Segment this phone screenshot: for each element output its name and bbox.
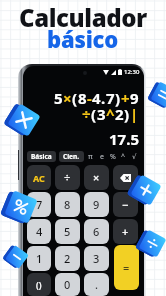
staticText: 9 <box>130 88 139 108</box>
button[interactable]: × <box>84 165 109 190</box>
button[interactable]: % <box>107 151 118 162</box>
staticText: 8 <box>64 197 71 212</box>
staticText: 5 <box>64 224 71 239</box>
staticText: Cien. <box>63 152 80 161</box>
staticText: 4 <box>92 88 101 108</box>
staticText: 2 <box>64 251 71 266</box>
staticText: 7 <box>106 88 115 108</box>
staticText: ( <box>72 88 78 108</box>
button[interactable]: ÷ <box>55 165 80 190</box>
staticText: π <box>88 152 93 162</box>
staticText: e <box>100 152 104 162</box>
staticText: 3 <box>97 104 106 124</box>
staticText: 4 <box>36 224 43 239</box>
button[interactable]: e <box>96 151 107 162</box>
staticText: ) <box>115 88 121 108</box>
button[interactable] <box>113 273 138 296</box>
button[interactable]: 0 <box>55 273 80 296</box>
button[interactable] <box>113 246 138 271</box>
staticText: 12:30 <box>124 68 140 76</box>
staticText: 1 <box>36 251 43 266</box>
button[interactable]: 5 <box>55 219 80 244</box>
staticText: √ <box>132 153 137 161</box>
staticText: AC <box>33 172 45 184</box>
button[interactable]: ^ <box>118 151 129 162</box>
staticText: Básica <box>31 152 52 161</box>
staticText: ) <box>124 104 130 124</box>
button[interactable]: 7 <box>27 192 51 217</box>
staticText: + <box>121 88 130 108</box>
staticText: 7 <box>36 197 43 212</box>
staticText: ^ <box>106 104 115 124</box>
staticText: 6 <box>93 224 100 239</box>
staticText: 2 <box>115 104 124 124</box>
staticText: 3 <box>93 251 100 266</box>
button[interactable]: Básica <box>27 151 56 162</box>
staticText: × <box>63 88 72 108</box>
staticText: % <box>110 152 116 162</box>
staticText: Calculador <box>19 1 147 34</box>
button[interactable]: 1 <box>27 246 51 271</box>
button[interactable]: + <box>113 219 138 244</box>
staticText: ÷ <box>82 104 91 124</box>
button[interactable]: 3 <box>84 246 109 271</box>
button[interactable]: 4 <box>27 219 51 244</box>
staticText: 5 <box>54 88 63 108</box>
staticText: . <box>101 88 106 108</box>
button[interactable]: √ <box>129 151 140 162</box>
button[interactable]: Backspace <box>113 165 138 190</box>
staticText: = <box>123 260 130 275</box>
staticText: ^ <box>121 152 126 162</box>
staticText: 0 <box>64 277 71 292</box>
button[interactable]: π <box>85 151 96 162</box>
button[interactable]: = <box>114 245 139 290</box>
button[interactable]: − <box>113 192 138 217</box>
staticText: ÷ <box>64 170 71 185</box>
staticText: () <box>36 279 42 291</box>
staticText: | <box>130 104 139 124</box>
button[interactable]: 8 <box>55 192 80 217</box>
button[interactable]: () <box>27 273 51 296</box>
staticText: − <box>122 197 129 212</box>
button[interactable]: 9 <box>84 192 109 217</box>
staticText: 17.5 <box>109 129 139 149</box>
staticText: . <box>95 277 98 292</box>
staticText: + <box>122 224 129 239</box>
button[interactable]: Cien. <box>59 151 84 162</box>
staticText: ( <box>91 104 97 124</box>
button[interactable]: 6 <box>84 219 109 244</box>
button[interactable]: AC <box>27 165 51 190</box>
staticText: básico <box>47 24 119 54</box>
button[interactable]: 2 <box>55 246 80 271</box>
staticText: 9 <box>93 197 100 212</box>
button[interactable]: . <box>84 273 109 296</box>
staticText: - <box>87 88 92 108</box>
staticText: × <box>93 170 100 185</box>
staticText: 8 <box>78 88 87 108</box>
